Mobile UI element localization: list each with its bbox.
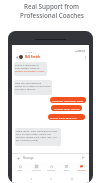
staticText: Weekly Reminders Check In [15, 69, 46, 72]
staticText: Real Support from [24, 2, 79, 11]
button[interactable]: Send [81, 155, 86, 160]
staticText: I'll send video shortly! [54, 107, 80, 110]
button[interactable]: Back [14, 54, 21, 61]
button[interactable]: Learn [59, 163, 74, 174]
staticText: Nutrition [47, 169, 56, 172]
button[interactable]: Let me know what you think [48, 114, 85, 120]
button[interactable]: Messages [74, 163, 89, 174]
staticText: Programs [32, 169, 41, 172]
button[interactable]: I'll send video shortly! [51, 105, 82, 111]
button[interactable]: More options [82, 54, 88, 60]
staticText: only 3/4 way down Subcat the [16, 132, 51, 135]
staticText: for a vertical (case). [16, 138, 39, 141]
button[interactable]: Workouts have been great [50, 97, 86, 103]
button[interactable]: How are you liking the workout [14, 80, 52, 95]
button[interactable]: Nutrition [44, 163, 59, 174]
staticText: Workouts have been great [52, 99, 84, 102]
staticText: How are you liking the workout [15, 81, 51, 84]
staticText: 12:30 [26, 50, 33, 53]
staticText: Message [23, 156, 34, 160]
button[interactable]: Back [28, 176, 33, 181]
button[interactable]: Great work - post reminder to read [15, 128, 61, 146]
button[interactable]: Add attachment [16, 156, 20, 160]
staticText: Great work - post reminder to read [16, 129, 57, 132]
button[interactable]: This is a reminder to complete [14, 62, 47, 76]
staticText: Learn [64, 169, 70, 172]
button[interactable]: Home [12, 163, 28, 174]
button[interactable]: Programs [28, 163, 44, 174]
staticText: Bill Smith [25, 55, 41, 59]
staticText: This is a reminder to complete [15, 63, 46, 66]
staticText: Home [17, 169, 23, 172]
staticText: you got a second. [15, 87, 36, 90]
staticText: Professional Coaches [20, 11, 84, 20]
staticText: your weekly check-in. [15, 66, 41, 69]
button[interactable]: Recents [69, 176, 74, 181]
staticText: position where your head 'left' APP [16, 135, 57, 138]
staticText: based on a video of your form [15, 84, 51, 87]
staticText: Messages [77, 169, 86, 172]
staticText: Let me know what you think [50, 116, 83, 119]
button[interactable]: Home [48, 176, 53, 181]
